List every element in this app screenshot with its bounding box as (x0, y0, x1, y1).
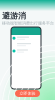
staticText: 避游消 (2, 11, 26, 21)
button[interactable]: 立即体验 (15, 90, 40, 97)
staticText: 移动端智能消费出行服务平台 (2, 21, 54, 26)
staticText: 立即体验 (19, 91, 35, 96)
